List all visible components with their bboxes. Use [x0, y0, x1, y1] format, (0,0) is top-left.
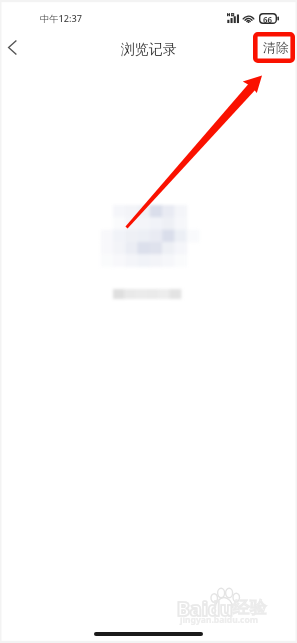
staticText: 经验	[233, 597, 267, 618]
staticText: Baidu	[177, 596, 233, 622]
staticText: 中午12:37	[40, 12, 82, 25]
button[interactable]: 清除	[259, 36, 293, 60]
staticText: 清除	[263, 40, 289, 56]
staticText: 浏览记录	[121, 41, 177, 59]
staticText: 66	[263, 14, 273, 25]
staticText: jingyan.baidu.com	[180, 614, 259, 626]
button[interactable]: Back	[0, 33, 26, 61]
